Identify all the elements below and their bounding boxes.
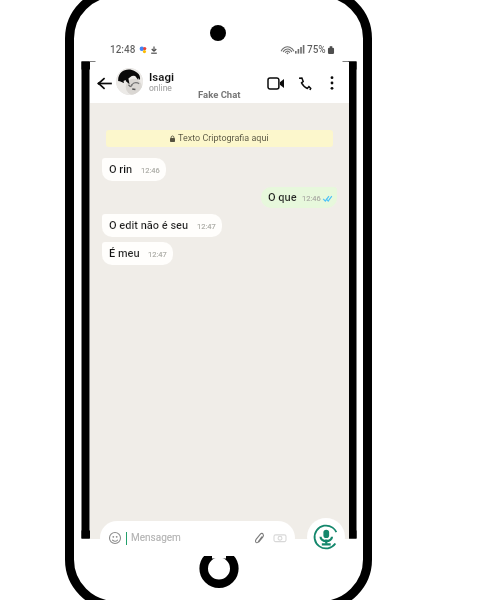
staticText: O que	[268, 191, 297, 204]
button[interactable]: More options	[320, 71, 344, 95]
staticText: 12:47	[148, 250, 167, 259]
staticText: Texto Criptografia aqui	[178, 133, 269, 144]
button[interactable]: O rin	[102, 158, 166, 181]
staticText: O edit não é seu	[109, 219, 189, 232]
button[interactable]: Voice call	[292, 71, 316, 95]
staticText: 12:46	[302, 194, 321, 203]
staticText: O rin	[109, 163, 133, 176]
staticText: Isagi	[149, 70, 175, 83]
button[interactable]: Mensagem	[100, 521, 295, 555]
button[interactable]: O edit não é seu	[102, 214, 222, 237]
staticText: Fake Chat	[198, 89, 241, 100]
staticText: 12:48	[110, 44, 136, 56]
button[interactable]: É meu	[102, 242, 173, 265]
button[interactable]: Back	[96, 68, 112, 98]
staticText: 12:47	[197, 222, 216, 231]
staticText: 12:46	[141, 166, 160, 175]
button[interactable]: O que	[261, 187, 337, 208]
staticText: Mensagem	[131, 532, 181, 544]
button[interactable]: Voice message	[307, 518, 345, 556]
button[interactable]: Video call	[264, 71, 288, 95]
button[interactable]: Attach	[252, 531, 266, 545]
staticText: 75%	[307, 44, 326, 56]
staticText: É meu	[109, 247, 140, 260]
staticText: online	[149, 83, 172, 93]
